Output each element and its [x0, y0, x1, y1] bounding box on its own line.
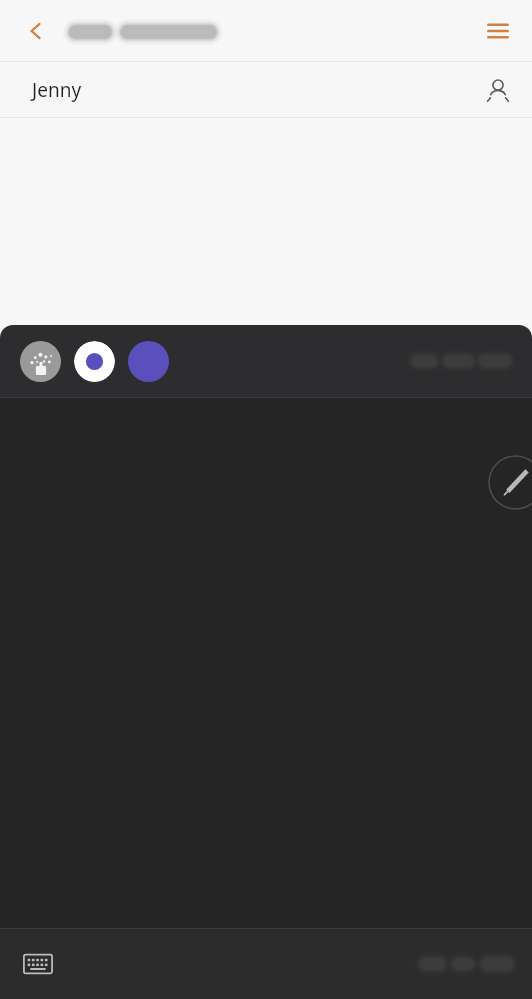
button[interactable]: Spray brush	[20, 341, 61, 382]
staticText: Jenny	[32, 77, 82, 103]
button[interactable]: Menu	[475, 8, 521, 54]
button[interactable]: Colour	[128, 341, 169, 382]
button[interactable]: Brush size	[74, 341, 115, 382]
button[interactable]: Draw	[488, 455, 532, 510]
button[interactable]	[418, 953, 514, 975]
button[interactable]: Back	[14, 9, 58, 53]
button[interactable]: Add contact	[476, 68, 520, 112]
button[interactable]: Jenny	[0, 62, 532, 118]
button[interactable]: Keyboard	[16, 942, 60, 986]
button[interactable]	[410, 350, 512, 372]
